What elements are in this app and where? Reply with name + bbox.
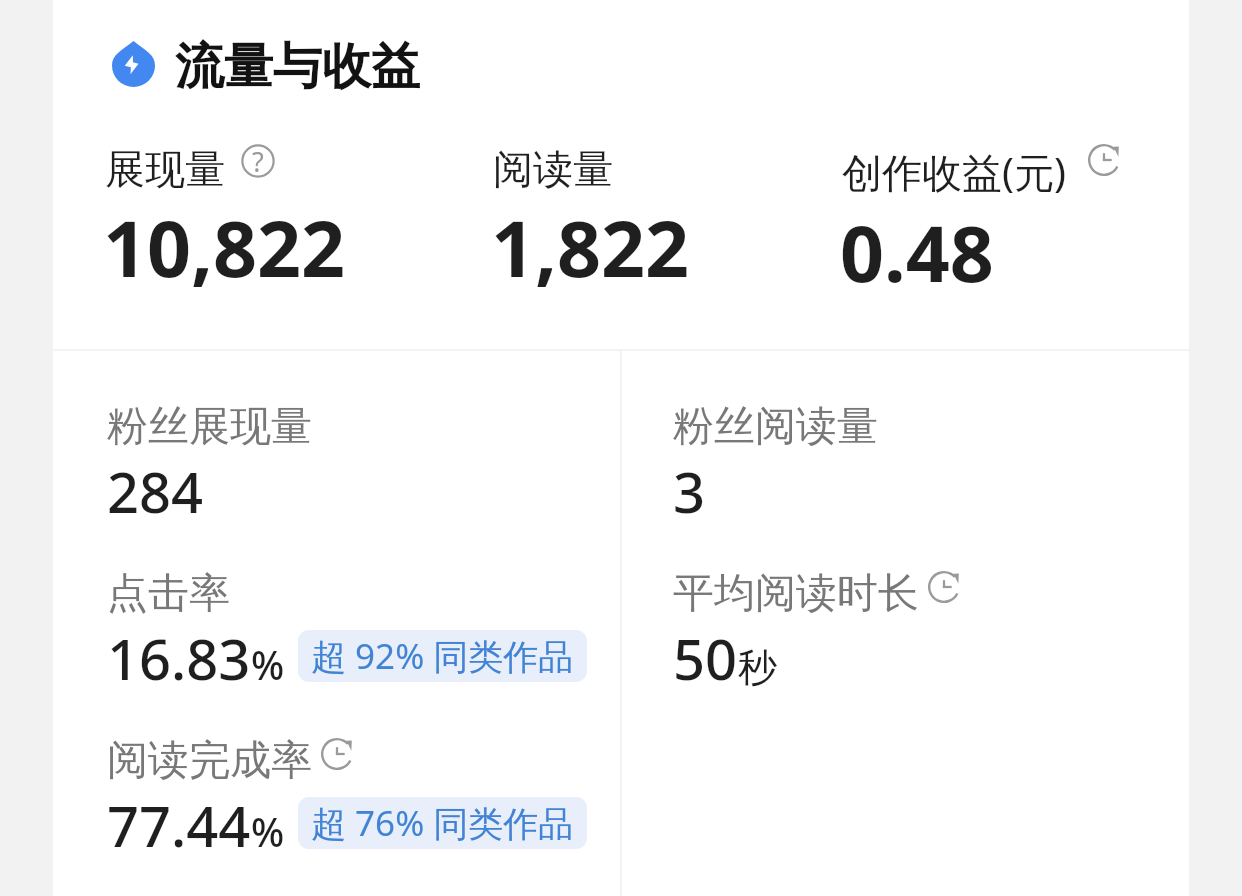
staticText: ? [252, 143, 264, 177]
button[interactable]: 阅读量 [493, 144, 692, 300]
staticText: 秒 [738, 643, 777, 692]
staticText: 3 [673, 453, 706, 529]
staticText: 阅读完成率 [107, 735, 312, 787]
button[interactable]: Help [241, 144, 275, 178]
other: Traffic [112, 41, 155, 87]
staticText: 50 [673, 620, 738, 696]
staticText: 超 76% 同类作品 [311, 799, 574, 847]
button[interactable]: Updated hourly [321, 738, 353, 770]
button[interactable]: 超 76% 同类作品 [298, 797, 587, 849]
staticText: 粉丝阅读量 [673, 401, 878, 453]
staticText: 16.83 [107, 620, 251, 696]
button[interactable]: 平均阅读时长 [673, 568, 960, 696]
staticText: 0.48 [840, 200, 994, 305]
button[interactable]: 创作收益(元) [842, 144, 1120, 305]
button[interactable]: Updated hourly [928, 571, 960, 603]
button[interactable]: 阅读完成率 [107, 735, 587, 863]
staticText: 10,822 [103, 195, 346, 300]
staticText: 创作收益(元) [842, 144, 1066, 199]
staticText: 超 92% 同类作品 [311, 632, 574, 680]
button[interactable]: 粉丝展现量 [107, 401, 312, 529]
button[interactable]: 粉丝阅读量 [673, 401, 878, 529]
staticText: 77.44 [107, 787, 251, 863]
staticText: % [251, 805, 285, 858]
staticText: % [251, 638, 285, 691]
button[interactable]: 超 92% 同类作品 [298, 630, 587, 682]
staticText: 284 [107, 453, 204, 529]
staticText: 粉丝展现量 [107, 401, 312, 453]
staticText: 流量与收益 [175, 36, 420, 98]
button[interactable]: Updated hourly [1088, 144, 1120, 176]
staticText: 展现量 [105, 144, 225, 194]
staticText: 点击率 [107, 568, 230, 620]
staticText: 阅读量 [493, 144, 613, 194]
button[interactable]: 展现量 [105, 144, 348, 300]
staticText: 1,822 [491, 195, 690, 300]
button[interactable]: 点击率 [107, 568, 587, 696]
staticText: 平均阅读时长 [673, 568, 919, 620]
